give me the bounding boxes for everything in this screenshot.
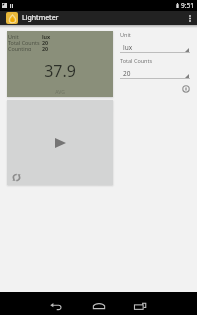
staticText: lux bbox=[123, 43, 133, 52]
button[interactable]: Recents bbox=[128, 296, 152, 315]
staticText: 20 bbox=[42, 45, 49, 51]
button[interactable]: Home bbox=[87, 295, 111, 315]
staticText: 20 bbox=[42, 39, 49, 45]
button[interactable]: 20 bbox=[120, 69, 190, 79]
staticText: lux bbox=[42, 33, 51, 39]
staticText: Lightmeter bbox=[22, 13, 59, 23]
button[interactable]: lux bbox=[120, 43, 190, 53]
button[interactable]: Start measuring bbox=[47, 130, 73, 156]
button[interactable]: Info bbox=[182, 85, 190, 93]
staticText: Total Counts bbox=[8, 39, 42, 45]
staticText: 37.9 bbox=[7, 60, 113, 82]
staticText: Unit bbox=[120, 31, 131, 38]
staticText: 20 bbox=[123, 69, 131, 78]
button[interactable]: Back bbox=[44, 296, 68, 315]
staticText: Unit bbox=[8, 33, 42, 39]
staticText: Total Counts bbox=[120, 57, 153, 64]
staticText: Counting bbox=[8, 45, 42, 51]
button[interactable]: Reset bbox=[8, 169, 24, 185]
staticText: 9:51 bbox=[181, 1, 194, 10]
button[interactable]: More options bbox=[183, 11, 197, 25]
